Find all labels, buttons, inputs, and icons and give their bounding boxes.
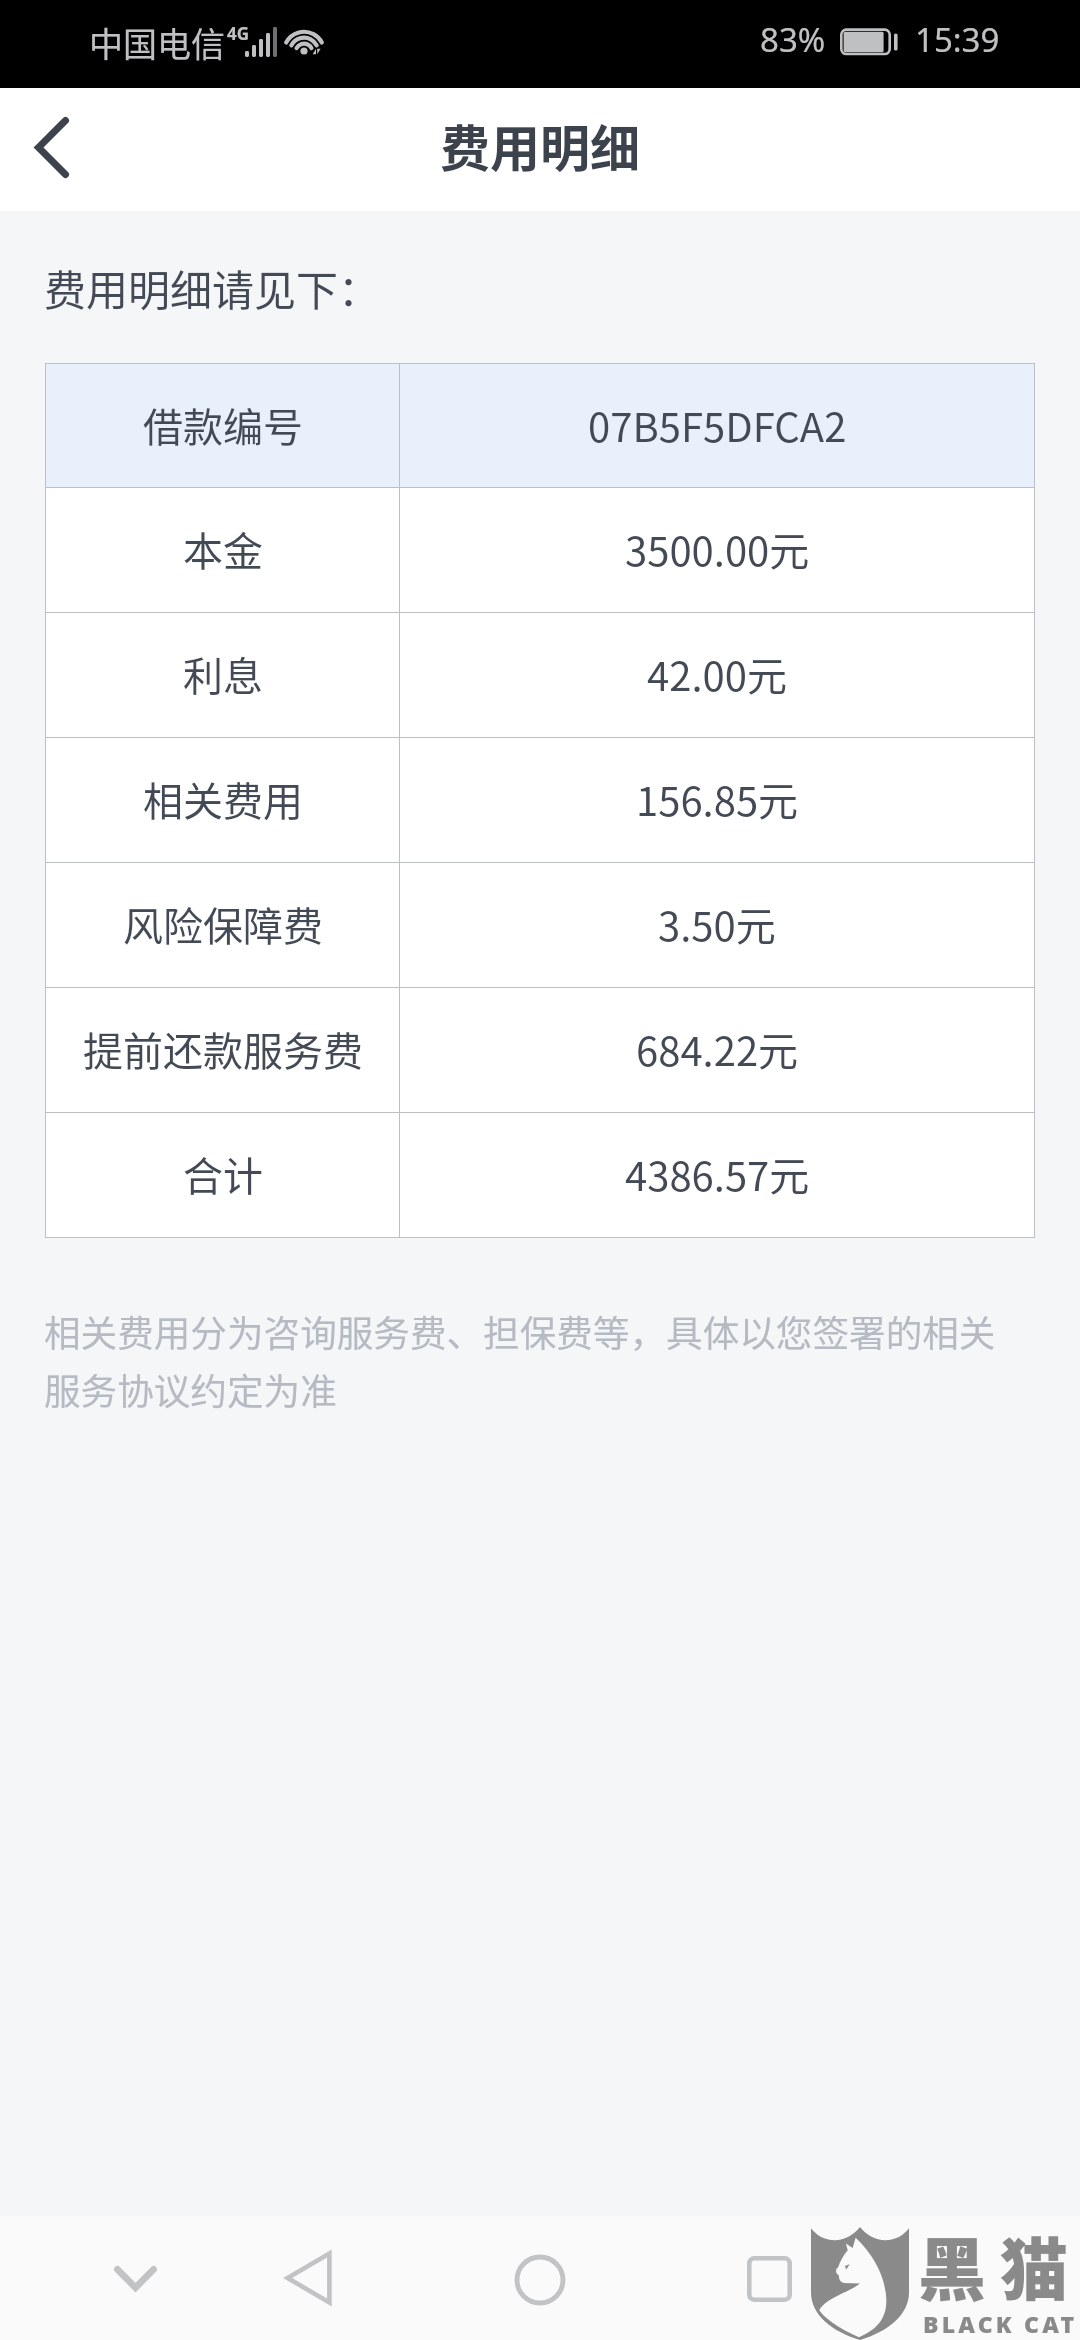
- staticText: 684.22元: [636, 1020, 799, 1078]
- staticText: 借款编号: [143, 396, 303, 454]
- button[interactable]: Hide keyboard: [80, 2223, 190, 2333]
- button[interactable]: Home: [485, 2225, 595, 2335]
- staticText: 本金: [183, 520, 263, 578]
- button[interactable]: Back: [253, 2223, 363, 2333]
- staticText: 3500.00元: [625, 520, 810, 578]
- staticText: BLACK CAT: [923, 2308, 1078, 2339]
- staticText: 提前还款服务费: [83, 1020, 363, 1078]
- staticText: 黑猫: [918, 2216, 1080, 2314]
- staticText: 15:39: [915, 17, 1000, 62]
- staticText: 4G: [227, 22, 250, 45]
- staticText: 相关费用: [143, 770, 303, 828]
- staticText: 风险保障费: [123, 895, 323, 953]
- staticText: 4386.57元: [625, 1145, 810, 1203]
- staticText: 合计: [183, 1145, 263, 1203]
- staticText: 156.85元: [636, 770, 799, 828]
- staticText: 07B5F5DFCA2: [588, 396, 847, 454]
- button[interactable]: Back: [0, 91, 108, 203]
- staticText: 中国电信: [89, 18, 225, 67]
- staticText: 83%: [760, 17, 826, 62]
- staticText: 3.50元: [658, 895, 776, 953]
- staticText: 相关费用分为咨询服务费、担保费等，具体以您签署的相关 服务协议约定为准: [44, 1305, 996, 1416]
- button[interactable]: Recents: [714, 2224, 824, 2334]
- staticText: 费用明细请见下：: [44, 257, 381, 318]
- staticText: 费用明细: [440, 109, 640, 181]
- staticText: 42.00元: [647, 645, 787, 703]
- staticText: 利息: [183, 645, 263, 703]
